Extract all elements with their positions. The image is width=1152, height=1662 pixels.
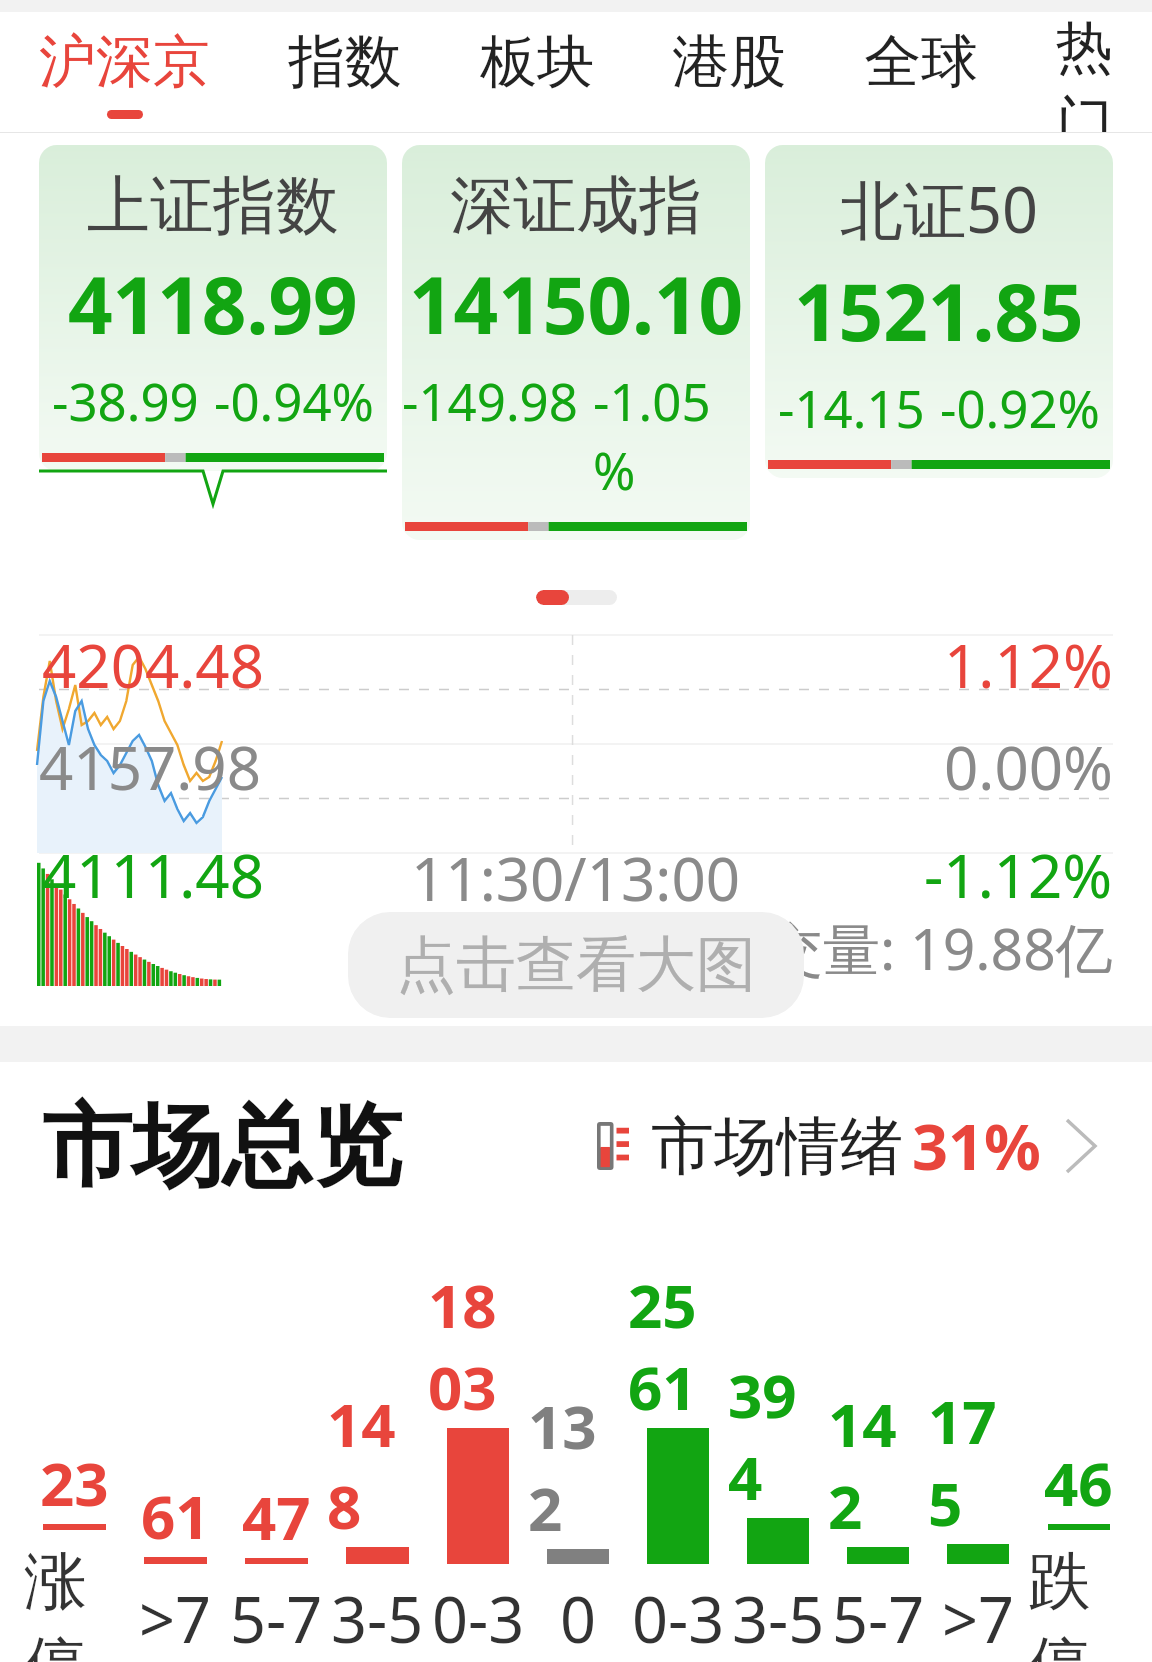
button[interactable]: 全球 <box>861 26 981 119</box>
button[interactable]: 上证指数 <box>39 145 387 471</box>
staticText: 沪深京 <box>39 26 210 98</box>
button[interactable]: 46 <box>1028 1230 1128 1662</box>
staticText: 市场情绪 <box>651 1107 903 1186</box>
button[interactable]: 23 <box>24 1230 125 1662</box>
staticText: 涨停 <box>24 1542 125 1662</box>
staticText: 142 <box>828 1383 928 1547</box>
button[interactable]: 港股 <box>669 26 789 119</box>
staticText: 0-3 <box>432 1576 525 1662</box>
staticText: 热门ETF <box>1056 12 1119 132</box>
button[interactable]: 142 <box>828 1264 928 1662</box>
staticText: 175 <box>928 1380 1028 1544</box>
staticText: 上证指数 <box>87 166 339 245</box>
button[interactable]: 175 <box>928 1264 1028 1662</box>
staticText: -149.98 <box>402 366 578 435</box>
staticText: >7 <box>139 1576 212 1662</box>
button[interactable]: 47 <box>226 1264 327 1662</box>
button[interactable]: 深证成指 <box>402 145 750 540</box>
staticText: 394 <box>728 1354 828 1518</box>
staticText: >7 <box>942 1576 1015 1662</box>
staticText: 4204.48 <box>42 624 264 706</box>
staticText: 指数 <box>288 26 402 98</box>
staticText: 4118.99 <box>68 251 358 357</box>
button[interactable]: 北证50 <box>765 145 1113 478</box>
staticText: 3-5 <box>331 1576 424 1662</box>
staticText: 市场总览 <box>42 1090 402 1203</box>
staticText: 5-7 <box>230 1576 323 1662</box>
staticText: 0-3 <box>632 1576 725 1662</box>
staticText: -1.05% <box>593 366 750 504</box>
staticText: -14.15 <box>778 373 925 442</box>
staticText: 14150.10 <box>409 251 744 357</box>
staticText: 0 <box>560 1576 597 1662</box>
button[interactable]: 板块 <box>477 26 597 119</box>
staticText: 板块 <box>480 26 594 98</box>
button[interactable]: 1803 <box>428 1264 528 1662</box>
staticText: 成交量: 19.88亿 <box>709 909 1113 987</box>
staticText: 3-5 <box>732 1576 825 1662</box>
button[interactable]: 394 <box>728 1264 828 1662</box>
staticText: 1521.85 <box>794 258 1084 364</box>
button[interactable]: 指数 <box>285 26 405 119</box>
staticText: 全球 <box>864 26 978 98</box>
button[interactable]: 市场情绪 <box>585 1091 1110 1201</box>
staticText: 2561 <box>628 1264 728 1428</box>
staticText: 11:30/13:00 <box>411 837 741 919</box>
staticText: 148 <box>327 1383 428 1547</box>
staticText: 31% <box>912 1103 1041 1189</box>
staticText: 北证50 <box>840 166 1039 252</box>
staticText: 23 <box>40 1442 109 1524</box>
staticText: 1.12% <box>944 624 1113 706</box>
button[interactable]: 沪深京 <box>36 26 213 119</box>
staticText: 0.00% <box>944 726 1113 808</box>
staticText: -1.12% <box>924 834 1113 916</box>
staticText: 4157.98 <box>39 726 261 808</box>
staticText: -38.99 <box>52 366 199 435</box>
button[interactable]: 132 <box>528 1264 628 1662</box>
staticText: 46 <box>1044 1442 1113 1524</box>
staticText: 1803 <box>428 1264 528 1428</box>
button[interactable]: 点击查看大图 <box>348 912 804 1018</box>
staticText: 47 <box>242 1476 311 1558</box>
staticText: 61 <box>141 1475 210 1557</box>
button[interactable]: 2561 <box>628 1264 728 1662</box>
staticText: 点击查看大图 <box>396 927 756 1003</box>
staticText: 深证成指 <box>450 166 702 245</box>
button[interactable]: 148 <box>327 1264 428 1662</box>
staticText: 跌停 <box>1028 1542 1128 1662</box>
staticText: -0.92% <box>940 373 1100 442</box>
staticText: 132 <box>528 1385 628 1549</box>
staticText: 4111.48 <box>42 834 264 916</box>
staticText: 5-7 <box>832 1576 925 1662</box>
staticText: 港股 <box>672 26 786 98</box>
button[interactable]: 61 <box>125 1264 226 1662</box>
button[interactable]: 热门ETF <box>1053 12 1122 132</box>
staticText: -0.94% <box>214 366 374 435</box>
